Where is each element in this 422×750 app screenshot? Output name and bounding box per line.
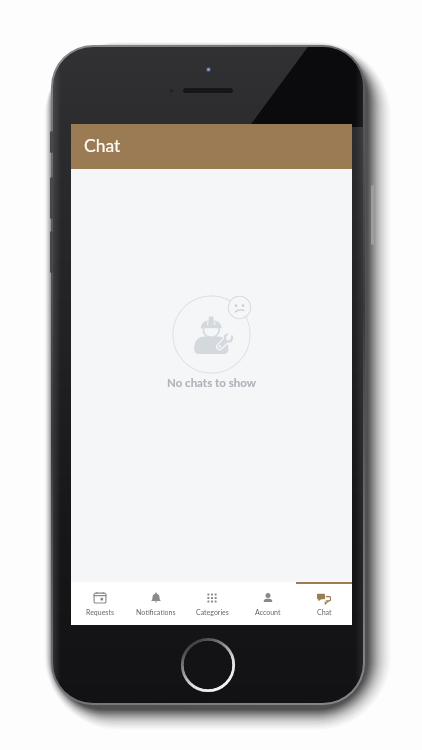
- staticText: Requests: [86, 608, 114, 616]
- staticText: Chat: [84, 135, 121, 156]
- button[interactable]: Chat: [296, 582, 352, 625]
- button[interactable]: Notifications: [128, 582, 184, 625]
- button[interactable]: Requests: [71, 582, 128, 625]
- staticText: Notifications: [136, 608, 176, 616]
- button[interactable]: Account: [240, 582, 296, 625]
- staticText: Chat: [317, 608, 332, 616]
- button[interactable]: Categories: [184, 582, 240, 625]
- staticText: No chats to show: [167, 376, 256, 390]
- staticText: Account: [255, 608, 281, 616]
- staticText: Categories: [196, 608, 229, 616]
